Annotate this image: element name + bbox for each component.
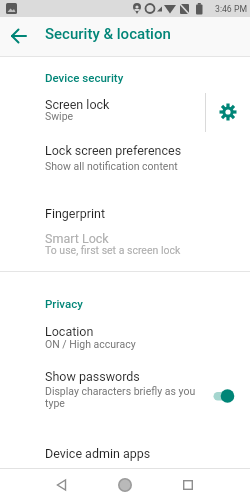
staticText: Privacy — [45, 297, 83, 310]
button[interactable] — [46, 468, 78, 501]
button[interactable]: Smart Lock — [0, 228, 250, 272]
staticText: Display characters briefly as you type — [45, 385, 205, 409]
staticText: Fingerprint — [45, 206, 106, 221]
button[interactable] — [109, 468, 141, 501]
button[interactable]: Show passwords — [0, 366, 250, 418]
staticText: Location — [45, 324, 94, 339]
staticText: ON / High accuracy — [45, 338, 215, 350]
button[interactable] — [7, 24, 31, 48]
staticText: Lock screen preferences — [45, 143, 182, 158]
staticText: Screen lock — [45, 97, 110, 112]
button[interactable]: Fingerprint — [0, 192, 250, 232]
staticText: Show passwords — [45, 369, 140, 384]
button[interactable] — [212, 96, 244, 128]
button[interactable]: Location — [0, 318, 250, 362]
staticText: Device admin apps — [45, 446, 151, 461]
staticText: Swipe — [45, 110, 74, 122]
staticText: Smart Lock — [45, 231, 109, 246]
button[interactable]: Lock screen preferences — [0, 136, 250, 184]
staticText: Device security — [45, 71, 124, 84]
staticText: 3:46 PM — [215, 4, 247, 14]
button[interactable] — [172, 468, 204, 501]
button[interactable]: Screen lock — [0, 88, 206, 136]
staticText: Security & location — [45, 25, 171, 43]
button[interactable]: Device admin apps — [0, 432, 250, 468]
staticText: To use, first set a screen lock — [45, 244, 215, 256]
staticText: Show all notification content — [45, 160, 215, 172]
